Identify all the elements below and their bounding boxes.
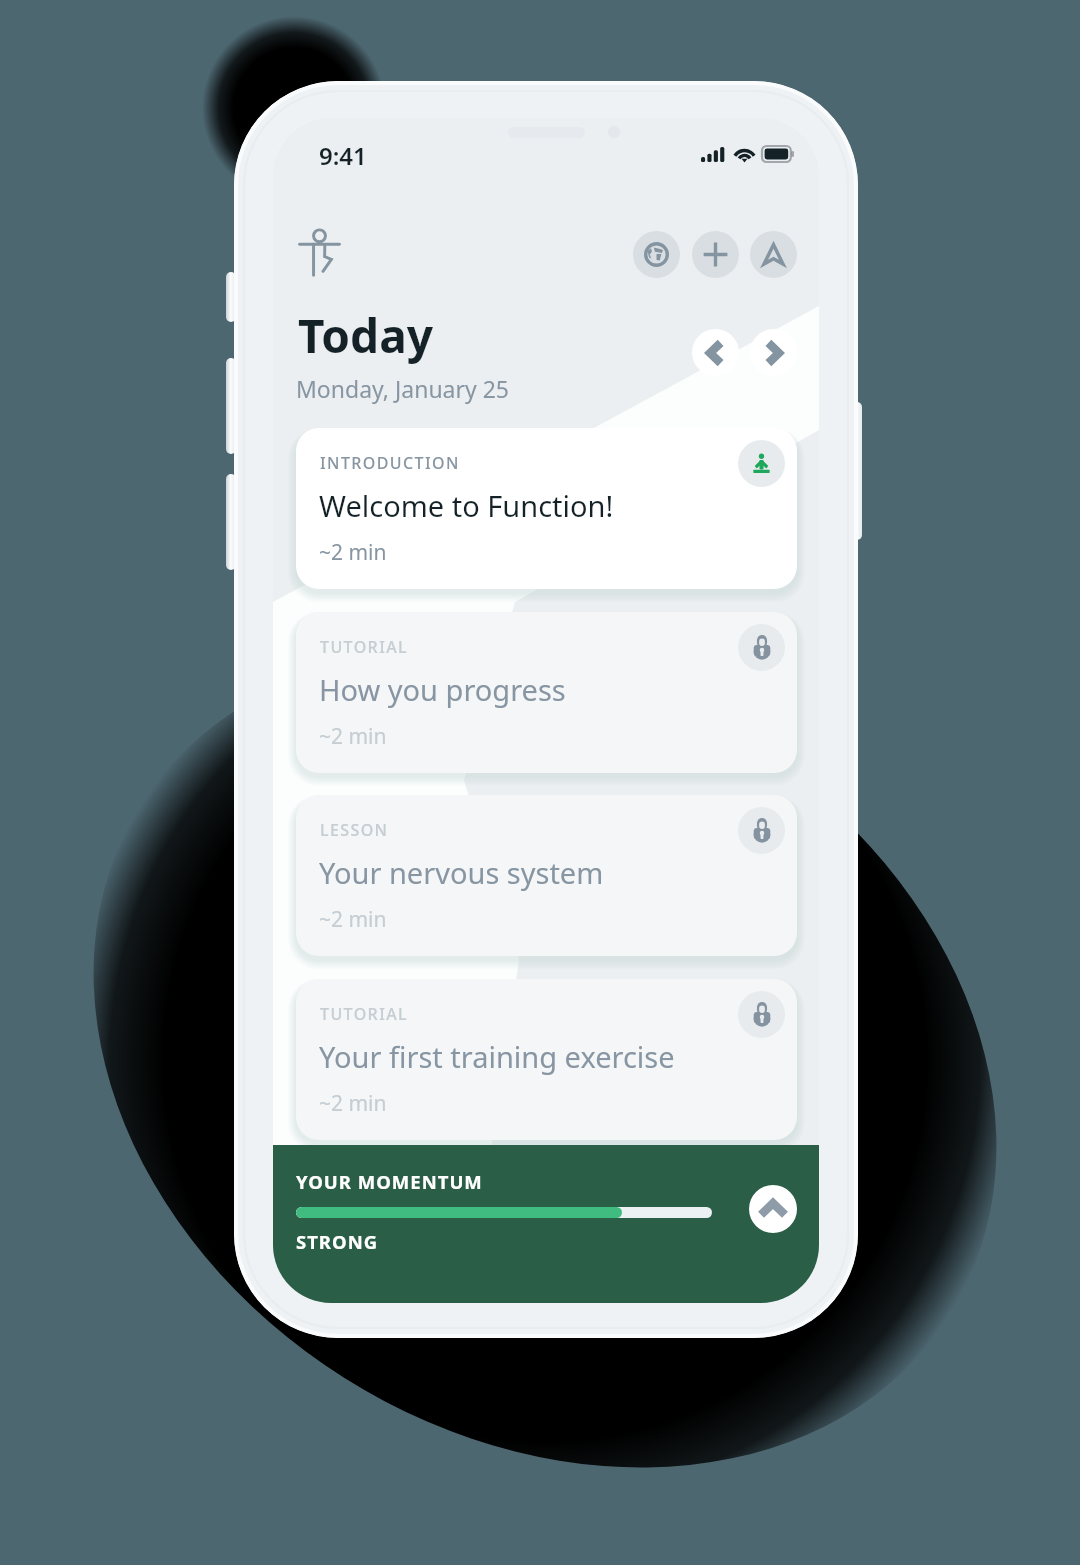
button[interactable]: Expand momentum <box>749 1185 797 1233</box>
staticText: STRONG <box>296 1229 379 1254</box>
staticText: ~2 min <box>319 905 387 934</box>
button[interactable]: Next day <box>750 329 797 376</box>
button[interactable]: LESSON <box>296 795 797 956</box>
staticText: Welcome to Function! <box>319 486 614 525</box>
button[interactable]: Add <box>692 231 739 278</box>
button[interactable]: INTRODUCTION <box>296 428 797 589</box>
staticText: YOUR MOMENTUM <box>296 1169 483 1194</box>
staticText: ~2 min <box>319 538 387 567</box>
staticText: Today <box>298 304 433 367</box>
staticText: How you progress <box>319 670 566 709</box>
button[interactable]: TUTORIAL <box>296 612 797 773</box>
staticText: TUTORIAL <box>320 636 409 658</box>
staticText: Monday, January 25 <box>296 373 510 404</box>
staticText: ~2 min <box>319 722 387 751</box>
staticText: ~2 min <box>319 1089 387 1118</box>
button[interactable]: Explore <box>633 231 680 278</box>
button[interactable]: TUTORIAL <box>296 979 797 1140</box>
staticText: LESSON <box>320 819 389 841</box>
button[interactable]: YOUR MOMENTUM <box>273 1145 819 1303</box>
staticText: Your nervous system <box>319 853 604 892</box>
staticText: TUTORIAL <box>320 1003 409 1025</box>
staticText: Your first training exercise <box>319 1037 675 1076</box>
staticText: 9:41 <box>319 139 367 172</box>
staticText: INTRODUCTION <box>320 452 460 474</box>
button[interactable]: Previous day <box>692 329 739 376</box>
button[interactable]: Navigate <box>750 231 797 278</box>
button[interactable]: Function logo <box>292 225 346 279</box>
